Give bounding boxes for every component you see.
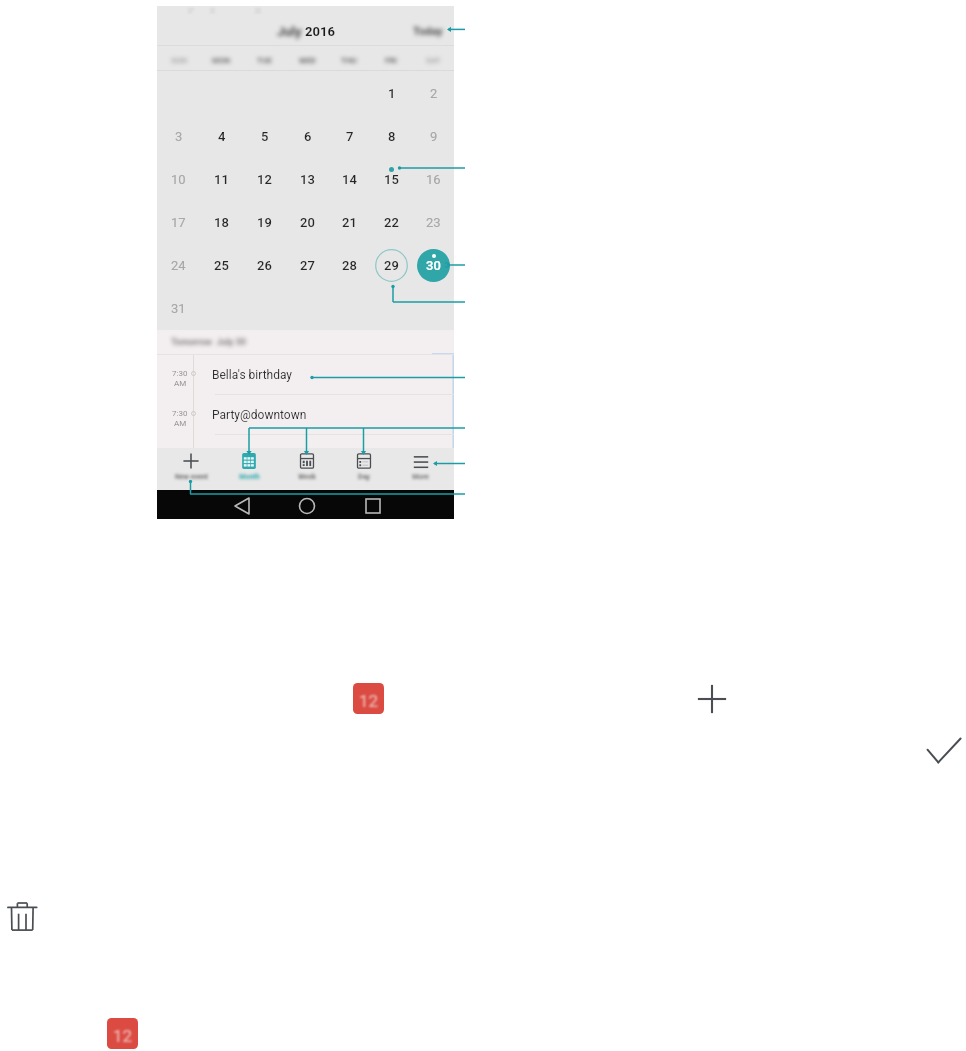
staticText: FRI: [385, 56, 397, 65]
staticText: AM: [174, 379, 187, 388]
staticText: 22: [384, 215, 399, 230]
staticText: 20: [300, 215, 315, 230]
staticText: 23: [426, 215, 441, 230]
staticText: Tomorrow July 30: [171, 337, 246, 348]
button[interactable]: 22: [375, 206, 408, 239]
button[interactable]: 2: [417, 77, 450, 110]
staticText: 29: [384, 258, 399, 273]
staticText: 12: [257, 172, 272, 187]
staticText: WED: [299, 56, 316, 65]
staticText: 3: [175, 129, 183, 144]
staticText: 16: [426, 172, 441, 187]
button[interactable]: 5: [248, 120, 281, 153]
button[interactable]: 10: [162, 163, 195, 196]
staticText: 7:30: [172, 409, 188, 418]
button[interactable]: 12: [248, 163, 281, 196]
button[interactable]: 17: [162, 206, 195, 239]
staticText: 17: [171, 215, 186, 230]
button[interactable]: 24: [162, 249, 195, 282]
staticText: 7:30: [172, 369, 188, 378]
button[interactable]: Calendar app icon: [107, 1018, 138, 1049]
staticText: Bella's birthday: [212, 368, 293, 382]
button[interactable]: 31: [162, 292, 195, 325]
staticText: 28: [342, 258, 357, 273]
staticText: 24: [171, 258, 186, 273]
button[interactable]: 14: [333, 163, 366, 196]
button[interactable]: Day: [335, 448, 392, 490]
staticText: 27: [300, 258, 315, 273]
button[interactable]: 13: [291, 163, 324, 196]
staticText: 6: [304, 129, 312, 144]
staticText: THU: [341, 56, 357, 65]
staticText: 26: [257, 258, 272, 273]
staticText: Month: [239, 473, 260, 481]
button[interactable]: Week: [278, 448, 335, 490]
staticText: 21: [342, 215, 357, 230]
staticText: Party@downtown: [212, 408, 307, 422]
button[interactable]: 28: [333, 249, 366, 282]
button[interactable]: 26: [248, 249, 281, 282]
staticText: Today: [413, 25, 443, 38]
staticText: 10: [171, 172, 186, 187]
button[interactable]: 16: [417, 163, 450, 196]
staticText: 1: [388, 86, 396, 101]
staticText: 2: [430, 86, 438, 101]
button[interactable]: Add: [697, 684, 727, 714]
staticText: 7: [346, 129, 354, 144]
button[interactable]: 23: [417, 206, 450, 239]
staticText: New event: [175, 473, 208, 481]
staticText: 2016: [305, 24, 335, 39]
button[interactable]: Done: [925, 734, 963, 772]
staticText: 9: [430, 129, 438, 144]
button[interactable]: 27: [291, 249, 324, 282]
button[interactable]: 11: [205, 163, 238, 196]
staticText: 19: [257, 215, 272, 230]
button[interactable]: Delete: [4, 898, 44, 938]
staticText: 12: [359, 691, 379, 711]
button[interactable]: New event: [162, 448, 220, 490]
button[interactable]: Month: [220, 448, 278, 490]
button[interactable]: Today: [413, 25, 443, 38]
button[interactable]: 6: [291, 120, 324, 153]
staticText: TUE: [257, 56, 272, 65]
button[interactable]: 8: [375, 120, 408, 153]
button[interactable]: 3: [162, 120, 195, 153]
button[interactable]: 30: [417, 249, 450, 282]
button[interactable]: 25: [205, 249, 238, 282]
staticText: 11: [214, 172, 229, 187]
button[interactable]: 7:30: [157, 395, 454, 434]
button[interactable]: 20: [291, 206, 324, 239]
button[interactable]: 29: [375, 249, 408, 282]
button[interactable]: 4: [205, 120, 238, 153]
button[interactable]: 15: [375, 163, 408, 196]
button[interactable]: Calendar app icon: [353, 683, 384, 714]
staticText: 4: [218, 129, 226, 144]
staticText: 14: [342, 172, 357, 187]
button[interactable]: 21: [333, 206, 366, 239]
staticText: 13: [300, 172, 315, 187]
staticText: MON: [212, 56, 231, 65]
staticText: Week: [298, 473, 316, 481]
staticText: Day: [358, 473, 370, 481]
button[interactable]: 7:30: [157, 355, 454, 394]
staticText: SUN: [171, 56, 187, 65]
staticText: 8: [388, 129, 396, 144]
button[interactable]: 7: [333, 120, 366, 153]
staticText: SAT: [426, 56, 441, 65]
staticText: 30: [426, 258, 441, 273]
staticText: 12: [113, 1026, 133, 1046]
staticText: 31: [171, 301, 186, 316]
button[interactable]: 9: [417, 120, 450, 153]
staticText: 15: [384, 172, 399, 187]
button[interactable]: 1: [375, 77, 408, 110]
staticText: 5: [261, 129, 269, 144]
button[interactable]: More: [392, 448, 449, 490]
button[interactable]: 18: [205, 206, 238, 239]
staticText: 18: [214, 215, 229, 230]
staticText: 25: [214, 258, 229, 273]
staticText: July: [277, 24, 302, 39]
staticText: AM: [174, 419, 187, 428]
button[interactable]: 19: [248, 206, 281, 239]
staticText: More: [412, 473, 429, 481]
